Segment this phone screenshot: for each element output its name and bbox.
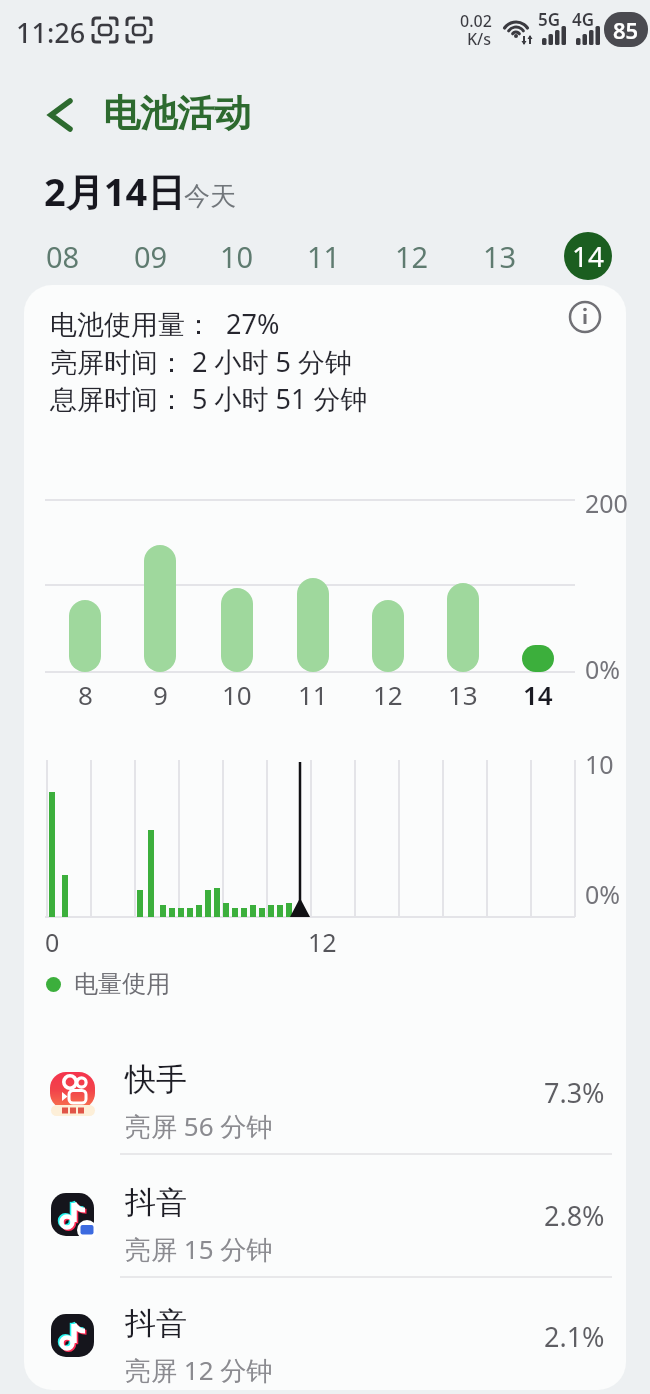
staticText: 11 (307, 237, 341, 276)
staticText: 08 (46, 237, 80, 276)
button[interactable]: 抖音 (24, 1155, 626, 1276)
button[interactable]: 10 (211, 230, 263, 282)
staticText: 电量使用 (74, 969, 170, 999)
staticText: 快手 (125, 1060, 187, 1099)
staticText: 12 (308, 925, 337, 959)
button[interactable]: 14 (564, 232, 612, 280)
button[interactable]: 13 (474, 230, 526, 282)
button[interactable]: 快手 (24, 1032, 626, 1153)
staticText: 0 (45, 925, 60, 959)
staticText: 0% (585, 877, 621, 911)
staticText: 亮屏时间： 2 小时 5 分钟 (50, 343, 352, 380)
staticText: 10 (222, 677, 252, 712)
staticText: 亮屏 12 分钟 (125, 1352, 273, 1388)
staticText: 9 (153, 677, 168, 712)
staticText: 息屏时间： 5 小时 51 分钟 (50, 380, 368, 417)
staticText: 14 (572, 237, 605, 275)
staticText: 11:26 (16, 14, 86, 51)
staticText: 亮屏 56 分钟 (125, 1108, 273, 1144)
button[interactable]: 抖音 (24, 1278, 626, 1394)
button[interactable] (38, 92, 84, 138)
staticText: 2.8% (544, 1197, 605, 1234)
staticText: 10 (585, 747, 614, 781)
staticText: 7.3% (544, 1074, 605, 1111)
button[interactable] (563, 295, 607, 339)
staticText: 今天 (184, 180, 236, 213)
staticText: 85 (613, 15, 639, 45)
staticText: 抖音 (125, 1304, 187, 1343)
staticText: 亮屏 15 分钟 (125, 1231, 273, 1267)
button[interactable]: 11 (298, 230, 350, 282)
staticText: 5G (538, 8, 561, 31)
staticText: 2月14日 (44, 165, 186, 217)
staticText: 09 (134, 237, 168, 276)
staticText: 13 (448, 677, 478, 712)
staticText: 抖音 (125, 1183, 187, 1222)
staticText: 12 (373, 677, 403, 712)
staticText: 200 (585, 486, 628, 520)
staticText: 8 (78, 677, 93, 712)
staticText: 2.1% (544, 1318, 605, 1355)
button[interactable]: 08 (37, 230, 89, 282)
staticText: 0.02 (460, 10, 492, 32)
staticText: 12 (395, 237, 429, 276)
staticText: 11 (298, 677, 328, 712)
staticText: 电池使用量： 27% (50, 305, 280, 342)
button[interactable]: 12 (386, 230, 438, 282)
staticText: 0% (585, 652, 621, 686)
button[interactable]: 09 (125, 230, 177, 282)
staticText: 14 (523, 677, 553, 712)
staticText: 电池活动 (103, 90, 251, 137)
staticText: 10 (220, 237, 254, 276)
staticText: 4G (572, 8, 595, 31)
staticText: K/s (467, 28, 492, 50)
staticText: 13 (483, 237, 517, 276)
